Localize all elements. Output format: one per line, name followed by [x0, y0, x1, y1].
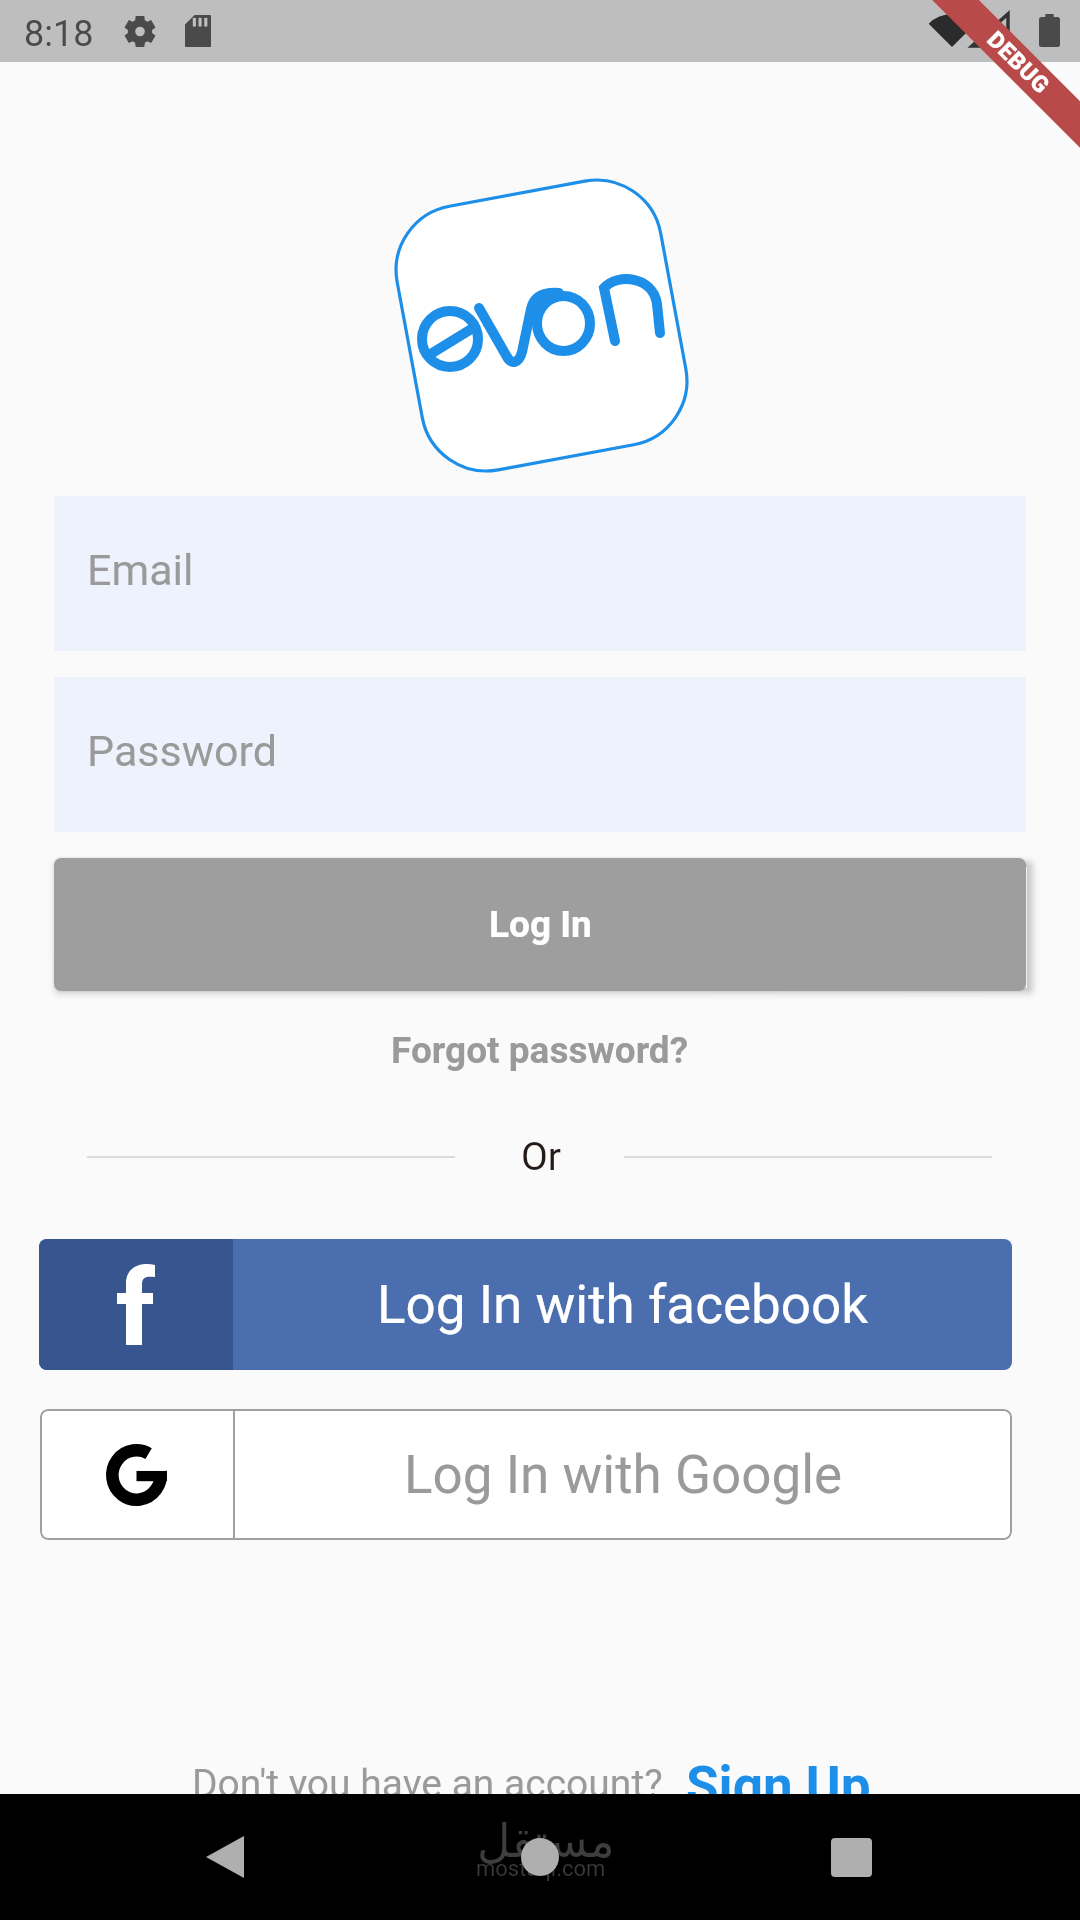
- button[interactable]: Home: [470, 1794, 610, 1920]
- button[interactable]: Sign Up: [686, 1755, 871, 1817]
- staticText: مستقل: [477, 1814, 615, 1868]
- button[interactable]: Recent apps: [781, 1794, 921, 1920]
- button[interactable]: Password: [54, 677, 1026, 832]
- staticText: Or: [521, 1134, 562, 1180]
- staticText: Log In: [489, 903, 592, 946]
- staticText: Log In with Google: [404, 1444, 843, 1506]
- button[interactable]: Log In with facebook: [39, 1239, 1012, 1370]
- button[interactable]: Email: [54, 496, 1026, 651]
- staticText: Log In with facebook: [377, 1274, 869, 1336]
- staticText: Forgot password?: [391, 1029, 689, 1072]
- button[interactable]: Log In with Google: [40, 1409, 1012, 1540]
- staticText: DEBUG: [982, 26, 1055, 100]
- staticText: Email: [87, 545, 194, 595]
- button[interactable]: Back: [155, 1794, 295, 1920]
- button[interactable]: Log In: [54, 858, 1026, 991]
- button[interactable]: Forgot password?: [353, 1019, 727, 1081]
- staticText: mostaql.com: [476, 1856, 606, 1882]
- staticText: Don't you have an account?: [192, 1761, 663, 1807]
- staticText: 8:18: [24, 13, 94, 55]
- staticText: Password: [87, 726, 277, 776]
- staticText: Sign Up: [686, 1755, 871, 1817]
